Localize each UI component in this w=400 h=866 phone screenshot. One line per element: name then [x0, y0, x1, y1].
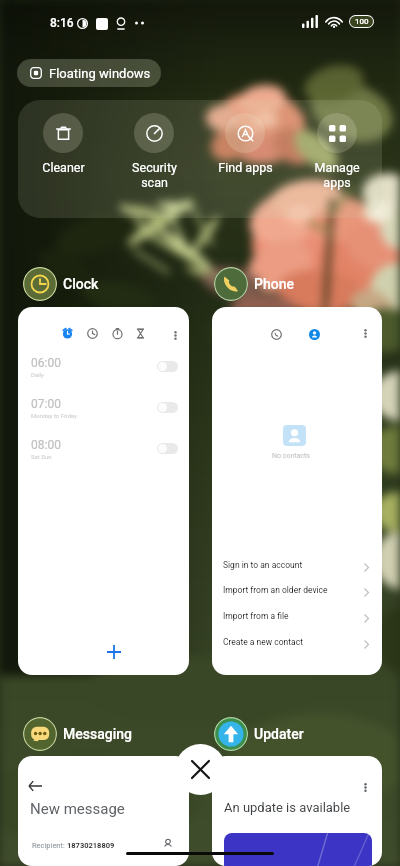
staticText: Security scan: [132, 160, 177, 190]
button[interactable]: Import from an older device: [212, 580, 382, 605]
button[interactable]: Security scan: [118, 113, 190, 190]
staticText: Recipient:: [32, 841, 67, 850]
staticText: 06:00: [31, 356, 61, 370]
staticText: Import from an older device: [223, 585, 328, 595]
button[interactable]: Close all: [175, 744, 226, 795]
button[interactable]: More options: [352, 320, 378, 346]
staticText: Daily: [31, 371, 44, 378]
staticText: Floating windows: [49, 66, 151, 81]
staticText: No contacts: [272, 452, 310, 460]
button[interactable]: Back: [18, 756, 189, 866]
staticText: An update is available: [224, 800, 351, 815]
button[interactable]: Back: [23, 774, 47, 798]
button[interactable]: Updater: [214, 717, 304, 751]
button[interactable]: Clock: [23, 267, 99, 301]
button[interactable]: Floating windows: [17, 59, 161, 87]
button[interactable]: Manage apps: [301, 113, 373, 190]
button[interactable]: 06:00: [18, 356, 189, 392]
button[interactable]: More options: [162, 322, 188, 348]
staticText: Import from a file: [223, 611, 289, 621]
button[interactable]: Phone: [214, 267, 294, 301]
button[interactable]: More options: [212, 307, 382, 675]
staticText: Clock: [63, 276, 99, 292]
button[interactable]: Sign in to an account: [212, 555, 382, 580]
button[interactable]: Import from a file: [212, 606, 382, 631]
staticText: 07:00: [31, 397, 61, 411]
button[interactable]: More options: [18, 307, 189, 675]
button[interactable]: More options: [212, 756, 382, 866]
staticText: Sign in to an account: [223, 560, 303, 570]
staticText: Messaging: [63, 726, 132, 742]
staticText: Create a new contact: [223, 637, 303, 647]
staticText: 18730218809: [67, 841, 115, 850]
staticText: New message: [30, 800, 125, 818]
staticText: Sat Sun: [31, 453, 52, 460]
staticText: Cleaner: [42, 160, 85, 175]
button[interactable]: Messaging: [23, 717, 132, 751]
staticText: 8:16: [50, 16, 74, 30]
staticText: 08:00: [31, 438, 61, 452]
staticText: Manage apps: [314, 160, 360, 190]
staticText: Monday to Friday: [31, 412, 77, 419]
button[interactable]: Cleaner: [27, 113, 99, 175]
staticText: Find apps: [218, 160, 273, 175]
button[interactable]: Find apps: [209, 113, 281, 175]
staticText: Phone: [254, 276, 294, 292]
button[interactable]: 08:00: [18, 438, 189, 474]
button[interactable]: Create a new contact: [212, 632, 382, 657]
button[interactable]: 07:00: [18, 397, 189, 433]
button[interactable]: More options: [352, 774, 378, 800]
staticText: Updater: [254, 726, 304, 742]
staticText: 100: [355, 17, 369, 26]
button[interactable]: Add alarm: [92, 630, 136, 674]
